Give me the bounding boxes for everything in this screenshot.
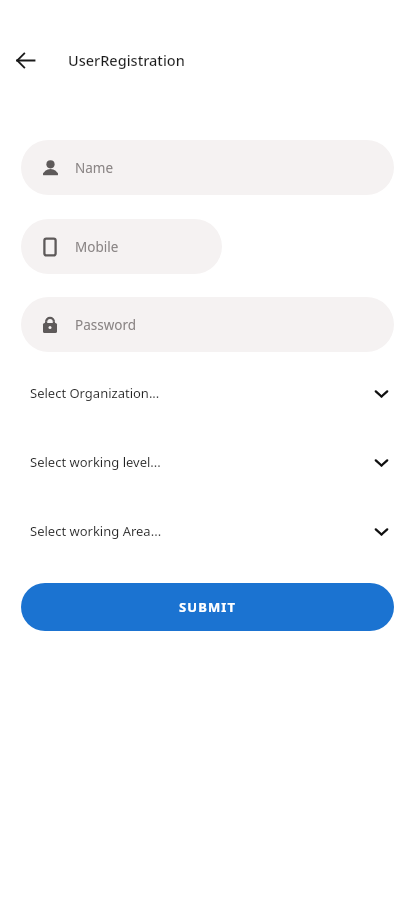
staticText: Password bbox=[75, 316, 137, 334]
button[interactable]: Back bbox=[7, 42, 43, 78]
staticText: Select Organization... bbox=[30, 384, 160, 402]
button[interactable]: Name bbox=[21, 140, 394, 195]
staticText: Name bbox=[75, 159, 114, 177]
button[interactable]: Select Organization... bbox=[0, 371, 415, 415]
staticText: SUBMIT bbox=[179, 598, 237, 616]
button[interactable]: Select working level... bbox=[0, 440, 415, 484]
button[interactable]: SUBMIT bbox=[21, 583, 394, 631]
button[interactable]: Mobile bbox=[21, 219, 222, 274]
staticText: UserRegistration bbox=[68, 50, 185, 70]
button[interactable]: Password bbox=[21, 297, 394, 352]
staticText: Select working Area... bbox=[30, 522, 162, 540]
staticText: Select working level... bbox=[30, 453, 161, 471]
button[interactable]: Select working Area... bbox=[0, 509, 415, 553]
staticText: Mobile bbox=[75, 238, 119, 256]
